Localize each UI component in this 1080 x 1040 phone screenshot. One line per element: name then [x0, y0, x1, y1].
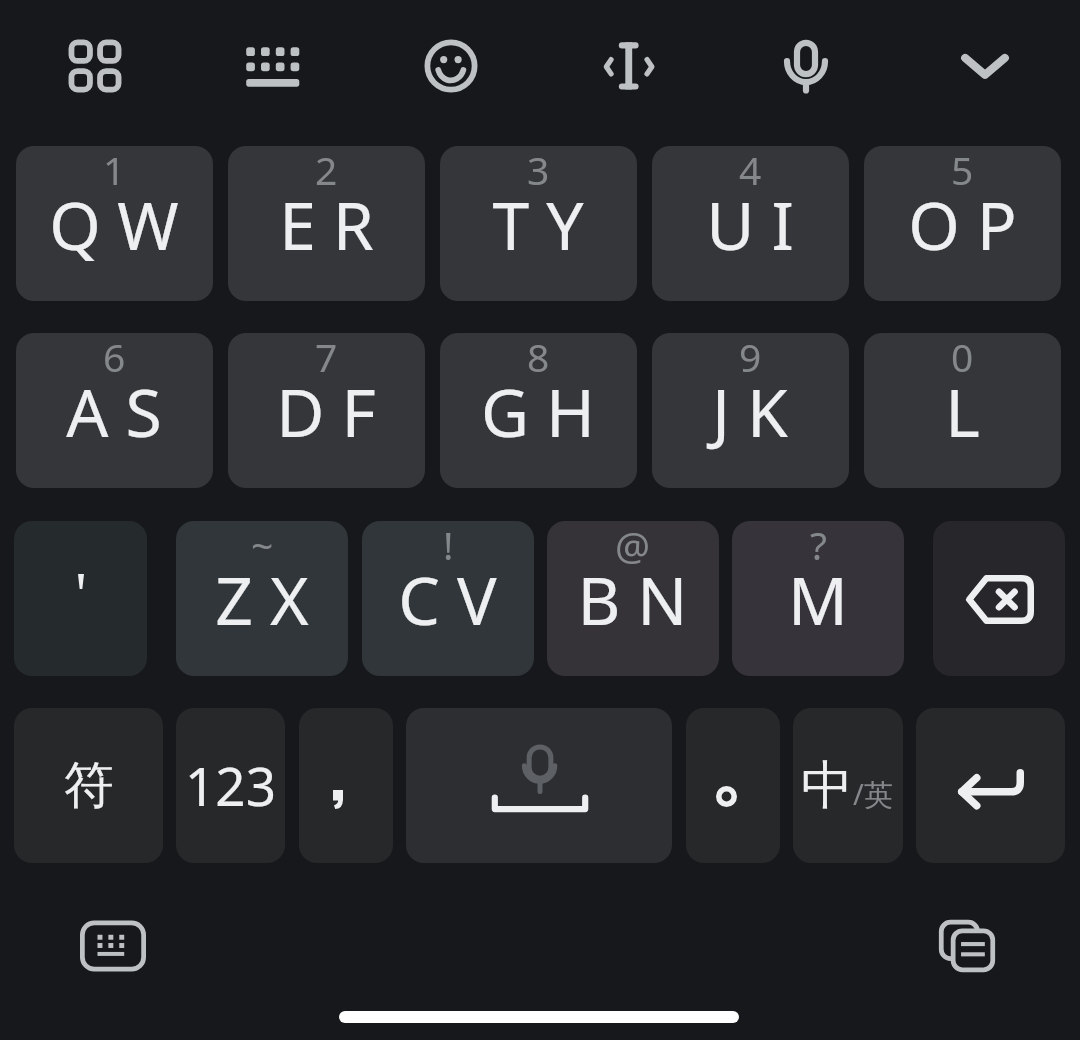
button[interactable]: 0	[864, 333, 1061, 488]
button[interactable]: Emoji	[403, 18, 499, 114]
staticText: L	[945, 366, 997, 456]
staticText: 2	[315, 146, 338, 196]
button[interactable]: 2	[228, 146, 425, 301]
staticText: ~	[251, 521, 274, 571]
staticText: 符	[64, 754, 114, 817]
button[interactable]: @	[547, 521, 719, 676]
button[interactable]: Hide keyboard	[937, 18, 1033, 114]
staticText: DF	[276, 366, 393, 456]
staticText: 中	[801, 753, 853, 819]
button[interactable]: Chinese / English	[793, 708, 903, 863]
staticText: 8	[527, 333, 550, 383]
button[interactable]: 9	[652, 333, 849, 488]
staticText: TY	[492, 179, 601, 269]
button[interactable]: Comma	[299, 708, 393, 863]
button[interactable]: 4	[652, 146, 849, 301]
staticText: CV	[398, 554, 514, 644]
staticText: AS	[66, 366, 179, 456]
staticText: 7	[315, 333, 338, 383]
button[interactable]: 符	[14, 708, 163, 863]
staticText: ?	[810, 521, 827, 571]
staticText: UI	[706, 179, 811, 269]
staticText: 1	[103, 146, 126, 196]
staticText: 6	[103, 333, 126, 383]
button[interactable]: 6	[16, 333, 213, 488]
button[interactable]: Move cursor	[581, 18, 677, 114]
staticText: 0	[951, 333, 974, 383]
button[interactable]: Full stop	[686, 708, 780, 863]
button[interactable]: Space	[406, 708, 672, 863]
staticText: QW	[49, 179, 196, 269]
staticText: 5	[951, 146, 974, 196]
button[interactable]: Voice input	[758, 18, 854, 114]
staticText: 9	[739, 333, 762, 383]
staticText: ZX	[215, 554, 326, 644]
button[interactable]: ~	[176, 521, 348, 676]
staticText: 4	[739, 146, 762, 196]
staticText: BN	[577, 554, 705, 644]
staticText: GH	[481, 366, 612, 456]
button[interactable]: Clipboard	[934, 913, 1000, 979]
button[interactable]: 7	[228, 333, 425, 488]
staticText: !	[443, 521, 454, 571]
staticText: JK	[712, 366, 805, 456]
staticText: ER	[279, 179, 391, 269]
staticText: 123	[185, 749, 276, 821]
button[interactable]: Apostrophe	[14, 521, 147, 676]
button[interactable]: Keyboard layout	[225, 19, 321, 115]
button[interactable]: Panels	[47, 18, 143, 114]
button[interactable]: 5	[864, 146, 1061, 301]
button[interactable]: !	[362, 521, 534, 676]
button[interactable]: ?	[732, 521, 904, 676]
staticText: OP	[908, 179, 1034, 269]
button[interactable]: 8	[440, 333, 637, 488]
button[interactable]: 3	[440, 146, 637, 301]
button[interactable]: 123	[176, 708, 285, 863]
staticText: /英	[853, 774, 893, 814]
staticText: 3	[527, 146, 550, 196]
button[interactable]: Enter	[916, 708, 1065, 863]
staticText: @	[615, 521, 651, 571]
button[interactable]: Backspace	[933, 521, 1065, 676]
staticText: M	[788, 554, 865, 644]
button[interactable]: 1	[16, 146, 213, 301]
button[interactable]: Switch keyboard	[80, 913, 146, 979]
